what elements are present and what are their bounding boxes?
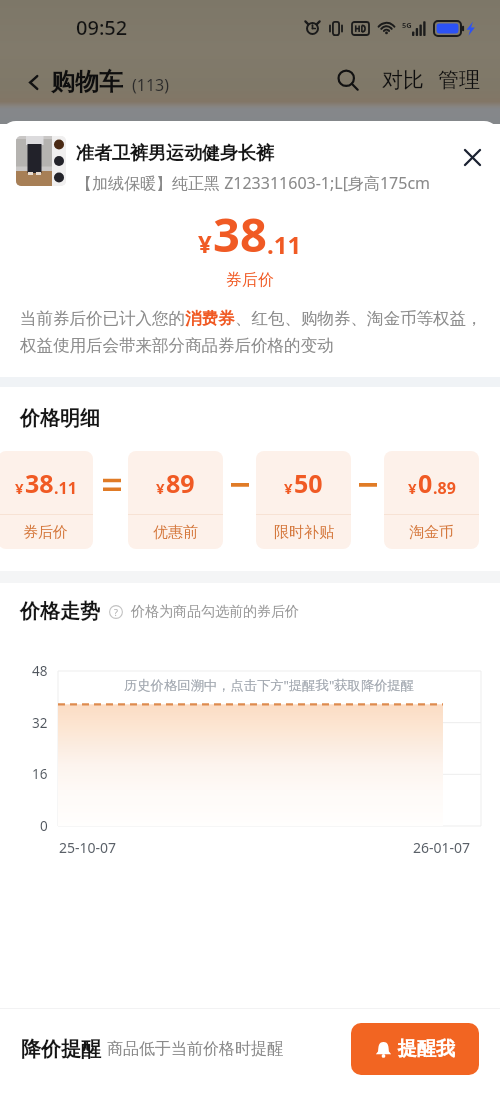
staticText: 淘金币 [409,523,454,542]
staticText: 价格走势 [20,599,100,624]
staticText: 限时补贴 [274,523,334,542]
staticText: 消费券 [185,308,235,329]
staticText: 5G [402,20,412,30]
staticText: 权益使用后会带来部分商品券后价格的变动 [20,335,334,356]
staticText: .11 [267,228,302,261]
other: Back [24,73,42,91]
staticText: 、红包、购物券、淘金币等权益， [235,308,483,329]
staticText: 38 [213,202,267,266]
button[interactable]: ¥ [0,451,93,549]
staticText: 购物车 [51,67,123,97]
staticText: .89 [433,477,456,499]
staticText: 准者卫裤男运动健身长裤 [76,142,274,165]
staticText: 商品低于当前价格时提醒 [107,1039,283,1059]
button[interactable]: Info [108,604,123,619]
staticText: ¥ [15,478,24,498]
staticText: 历史价格回溯中，点击下方"提醒我"获取降价提醒 [124,676,415,694]
button[interactable]: Close [456,146,488,168]
staticText: ¥ [408,478,417,498]
button[interactable]: Back [24,67,170,97]
staticText: 32 [32,714,48,732]
staticText: 09:52 [76,14,128,41]
staticText: 降价提醒 [21,1037,101,1062]
staticText: 管理 [438,67,480,93]
staticText: 89 [166,466,195,500]
button[interactable]: Search [336,68,360,92]
staticText: 48 [32,662,48,680]
staticText: 价格为商品勾选前的券后价 [131,603,299,621]
button[interactable]: ¥ [384,451,479,549]
button[interactable]: 提醒我 [351,1023,479,1075]
staticText: 0 [40,817,48,835]
staticText: 50 [294,466,323,500]
staticText: 0 [418,466,433,500]
staticText: ¥ [156,478,165,498]
button[interactable]: ¥ [256,451,351,549]
staticText: 优惠前 [153,523,198,542]
staticText: 16 [32,765,48,783]
staticText: 【加绒保暖】纯正黑 Z123311603-1;L[身高175cm [76,172,431,194]
staticText: 25-10-07 [59,838,117,857]
button[interactable]: 管理 [438,67,480,93]
staticText: ¥ [198,227,212,260]
staticText: (113) [132,74,170,96]
staticText: 价格明细 [20,406,100,431]
button[interactable]: 对比 [382,67,424,93]
staticText: 当前券后价已计入您的 [20,308,185,329]
staticText: 券后价 [226,270,274,290]
staticText: 券后价 [23,523,68,542]
staticText: ¥ [284,478,293,498]
staticText: 对比 [382,67,424,93]
staticText: ? [114,606,118,618]
staticText: 26-01-07 [413,838,471,857]
button[interactable]: ¥ [128,451,223,549]
staticText: 38 [25,466,54,500]
staticText: .11 [54,477,77,499]
staticText: 提醒我 [398,1037,455,1061]
